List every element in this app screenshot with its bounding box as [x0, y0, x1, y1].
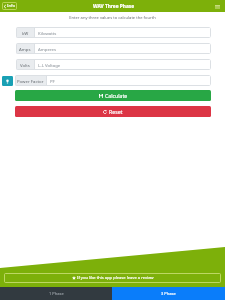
staticText: Enter any three values to calculate the …	[0, 15, 225, 21]
staticText: Reset	[109, 108, 123, 115]
button[interactable]: 3 Phase	[112, 287, 225, 300]
button[interactable]: More options	[215, 4, 220, 9]
staticText: Info	[7, 3, 15, 9]
button[interactable]: Calculate	[15, 90, 211, 101]
staticText: L-L Voltage	[38, 62, 61, 68]
staticText: 1 Phase	[49, 291, 64, 296]
button[interactable]: 1 Phase	[0, 287, 112, 300]
staticText: Calculate	[105, 92, 128, 99]
button[interactable]: Amps	[16, 43, 211, 54]
staticText: Amps	[19, 46, 31, 52]
button[interactable]: Power factor information	[2, 76, 13, 86]
staticText: WAV Three Phase	[93, 3, 135, 10]
staticText: Power Factor	[17, 78, 44, 84]
button[interactable]: If you like this app please leave a revi…	[4, 273, 221, 283]
staticText: Amperes	[38, 46, 56, 52]
button[interactable]: kW	[16, 27, 211, 38]
staticText: If you like this app please leave a revi…	[77, 275, 154, 281]
button[interactable]: Reset	[15, 106, 211, 117]
staticText: Kilowatts	[38, 30, 57, 36]
staticText: Volts	[20, 62, 30, 68]
button[interactable]: Info	[2, 2, 17, 10]
button[interactable]: Volts	[16, 59, 211, 70]
button[interactable]: Power Factor	[15, 75, 211, 86]
staticText: 3 Phase	[161, 291, 176, 296]
staticText: PF	[50, 78, 55, 84]
staticText: kW	[22, 30, 29, 36]
